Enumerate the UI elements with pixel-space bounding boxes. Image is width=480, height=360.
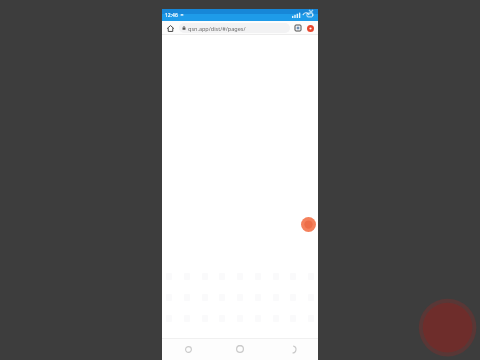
staticText: 12:46	[165, 12, 178, 19]
button[interactable]: Home	[232, 341, 248, 357]
button[interactable]: Recent apps	[284, 341, 300, 357]
button[interactable]: Back	[180, 341, 196, 357]
button[interactable]: Switch tabs	[293, 23, 303, 33]
button[interactable]: qsn.app/dist/#/pages/	[179, 23, 290, 33]
staticText: qsn.app/dist/#/pages/	[188, 25, 246, 32]
button[interactable]: Home	[165, 23, 176, 34]
button[interactable]: Action button	[301, 217, 316, 232]
button[interactable]: Account	[305, 23, 315, 33]
